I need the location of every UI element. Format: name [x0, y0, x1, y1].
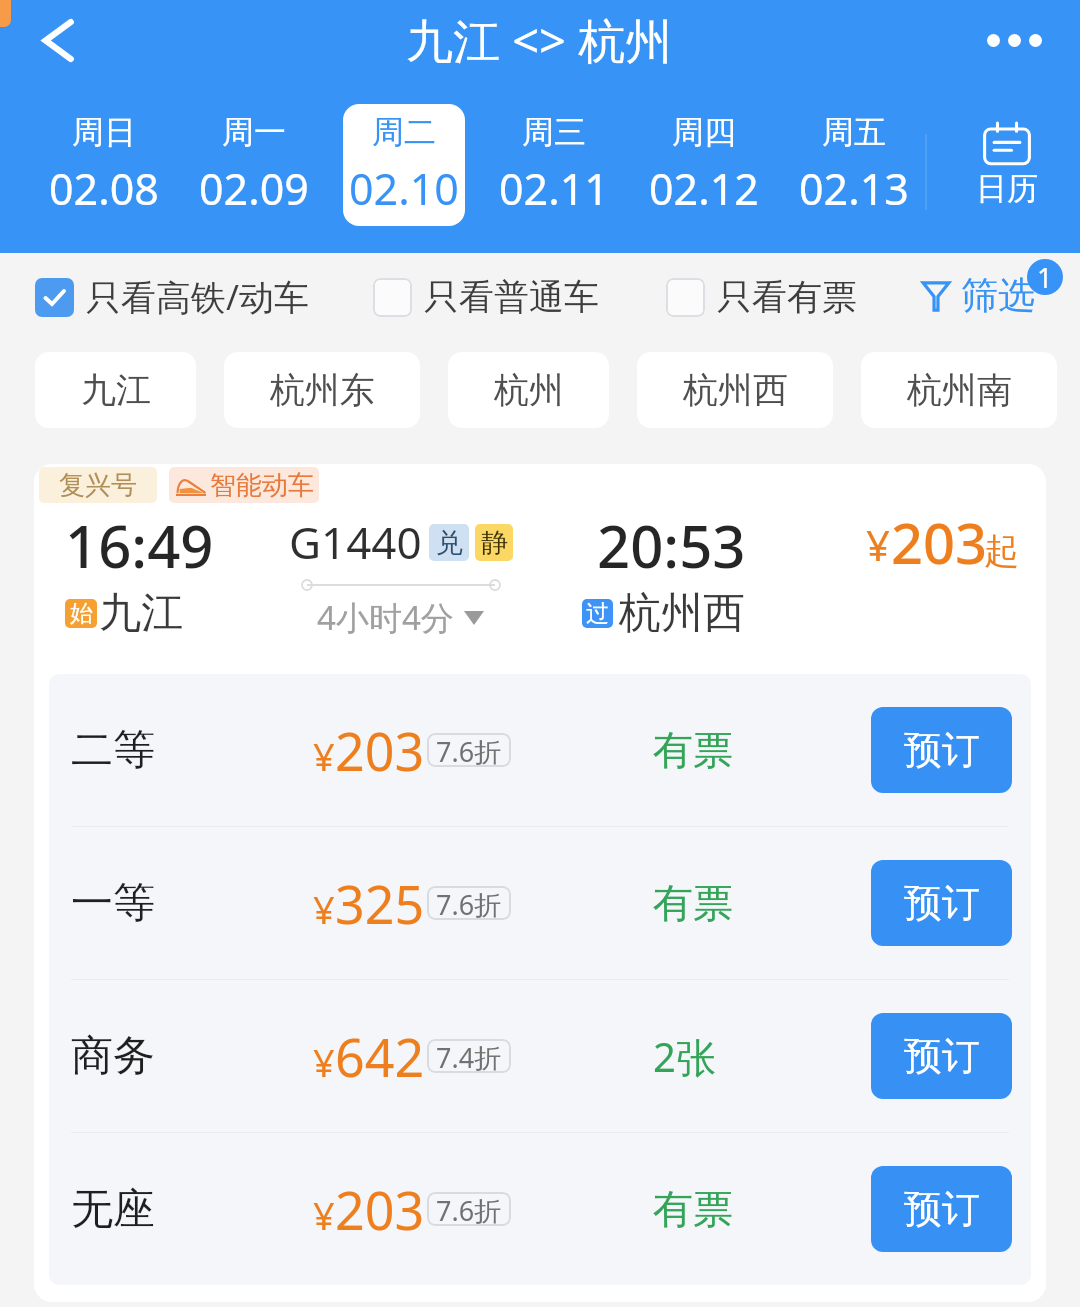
button[interactable]: 只看高铁/动车	[35, 273, 310, 321]
button[interactable]: 预订	[871, 860, 1012, 946]
staticText: 周一	[222, 112, 286, 152]
staticText: 九江 <> 杭州	[406, 8, 673, 72]
staticText: 325	[335, 868, 425, 939]
button[interactable]: 筛选	[922, 265, 1038, 325]
staticText: 02.12	[649, 159, 759, 218]
staticText: 203	[891, 504, 988, 580]
staticText: 九江	[99, 587, 183, 640]
staticText: 2张	[653, 1029, 716, 1084]
staticText: 预订	[904, 1185, 980, 1233]
button[interactable]: 周四	[643, 104, 765, 226]
staticText: 商务	[71, 1030, 155, 1083]
button[interactable]: 周日	[43, 104, 165, 226]
staticText: 1	[1037, 259, 1053, 295]
staticText: 静	[481, 526, 508, 560]
button[interactable]: 杭州	[448, 352, 609, 428]
staticText: 一等	[71, 877, 155, 930]
staticText: 02.09	[199, 159, 309, 218]
staticText: 有票	[653, 725, 733, 775]
staticText: 筛选	[961, 272, 1035, 319]
staticText: 只看有票	[717, 275, 857, 319]
staticText: ¥	[313, 1036, 335, 1088]
staticText: 起	[984, 529, 1019, 573]
staticText: 无座	[71, 1183, 155, 1236]
staticText: 02.10	[349, 159, 459, 218]
button[interactable]: Back	[21, 4, 93, 76]
staticText: 02.13	[799, 159, 909, 218]
staticText: ¥	[313, 1189, 335, 1241]
staticText: 杭州西	[683, 368, 788, 412]
button[interactable]: 日历	[932, 86, 1080, 249]
button[interactable]: 无座	[49, 1133, 1031, 1285]
staticText: 周四	[672, 112, 736, 152]
button[interactable]: 杭州南	[861, 352, 1057, 428]
button[interactable]: 周一	[193, 104, 315, 226]
button[interactable]: 周五	[793, 104, 915, 226]
staticText: 203	[335, 715, 425, 786]
staticText: 杭州	[494, 368, 564, 412]
staticText: ¥	[313, 883, 335, 935]
staticText: 只看高铁/动车	[86, 273, 310, 321]
staticText: 有票	[653, 878, 733, 928]
button[interactable]: 预订	[871, 1013, 1012, 1099]
staticText: 周五	[822, 112, 886, 152]
staticText: 智能动车	[210, 469, 314, 502]
button[interactable]: 只看有票	[666, 275, 857, 319]
staticText: 642	[335, 1021, 425, 1092]
button[interactable]: 周三	[493, 104, 615, 226]
staticText: 周三	[522, 112, 586, 152]
staticText: 二等	[71, 724, 155, 777]
button[interactable]: 预订	[871, 707, 1012, 793]
button[interactable]: 只看普通车	[373, 275, 599, 319]
staticText: 预订	[904, 726, 980, 774]
staticText: ¥	[866, 516, 891, 573]
staticText: 7.6折	[436, 733, 502, 767]
staticText: 4小时4分	[317, 595, 454, 640]
button[interactable]: 杭州东	[224, 352, 420, 428]
staticText: 复兴号	[59, 469, 137, 502]
staticText: 周二	[372, 112, 436, 152]
button[interactable]: 九江	[35, 352, 196, 428]
staticText: 始	[70, 599, 93, 628]
button[interactable]: 二等	[49, 674, 1031, 826]
staticText: 杭州东	[270, 368, 375, 412]
staticText: 16:49	[65, 506, 214, 585]
staticText: 只看普通车	[424, 275, 599, 319]
button[interactable]: 一等	[49, 827, 1031, 979]
staticText: 预订	[904, 1032, 980, 1080]
staticText: 日历	[976, 169, 1038, 208]
staticText: 7.4折	[436, 1039, 502, 1073]
staticText: 周日	[72, 112, 136, 152]
staticText: 预订	[904, 879, 980, 927]
staticText: ¥	[313, 730, 335, 782]
staticText: 杭州南	[907, 368, 1012, 412]
staticText: 203	[335, 1174, 425, 1245]
staticText: 7.6折	[436, 886, 502, 920]
button[interactable]: 预订	[871, 1166, 1012, 1252]
button[interactable]: 杭州西	[637, 352, 833, 428]
staticText: 杭州西	[619, 587, 745, 640]
staticText: 有票	[653, 1184, 733, 1234]
staticText: 02.11	[499, 159, 609, 218]
staticText: 7.6折	[436, 1192, 502, 1226]
staticText: G1440	[289, 512, 422, 572]
staticText: 九江	[81, 368, 151, 412]
staticText: 02.08	[49, 159, 159, 218]
staticText: 20:53	[597, 506, 746, 585]
staticText: 过	[586, 599, 609, 628]
button[interactable]: 商务	[49, 980, 1031, 1132]
staticText: 兑	[436, 526, 463, 560]
button[interactable]: More options	[975, 4, 1053, 76]
button[interactable]: 周二	[343, 104, 465, 226]
